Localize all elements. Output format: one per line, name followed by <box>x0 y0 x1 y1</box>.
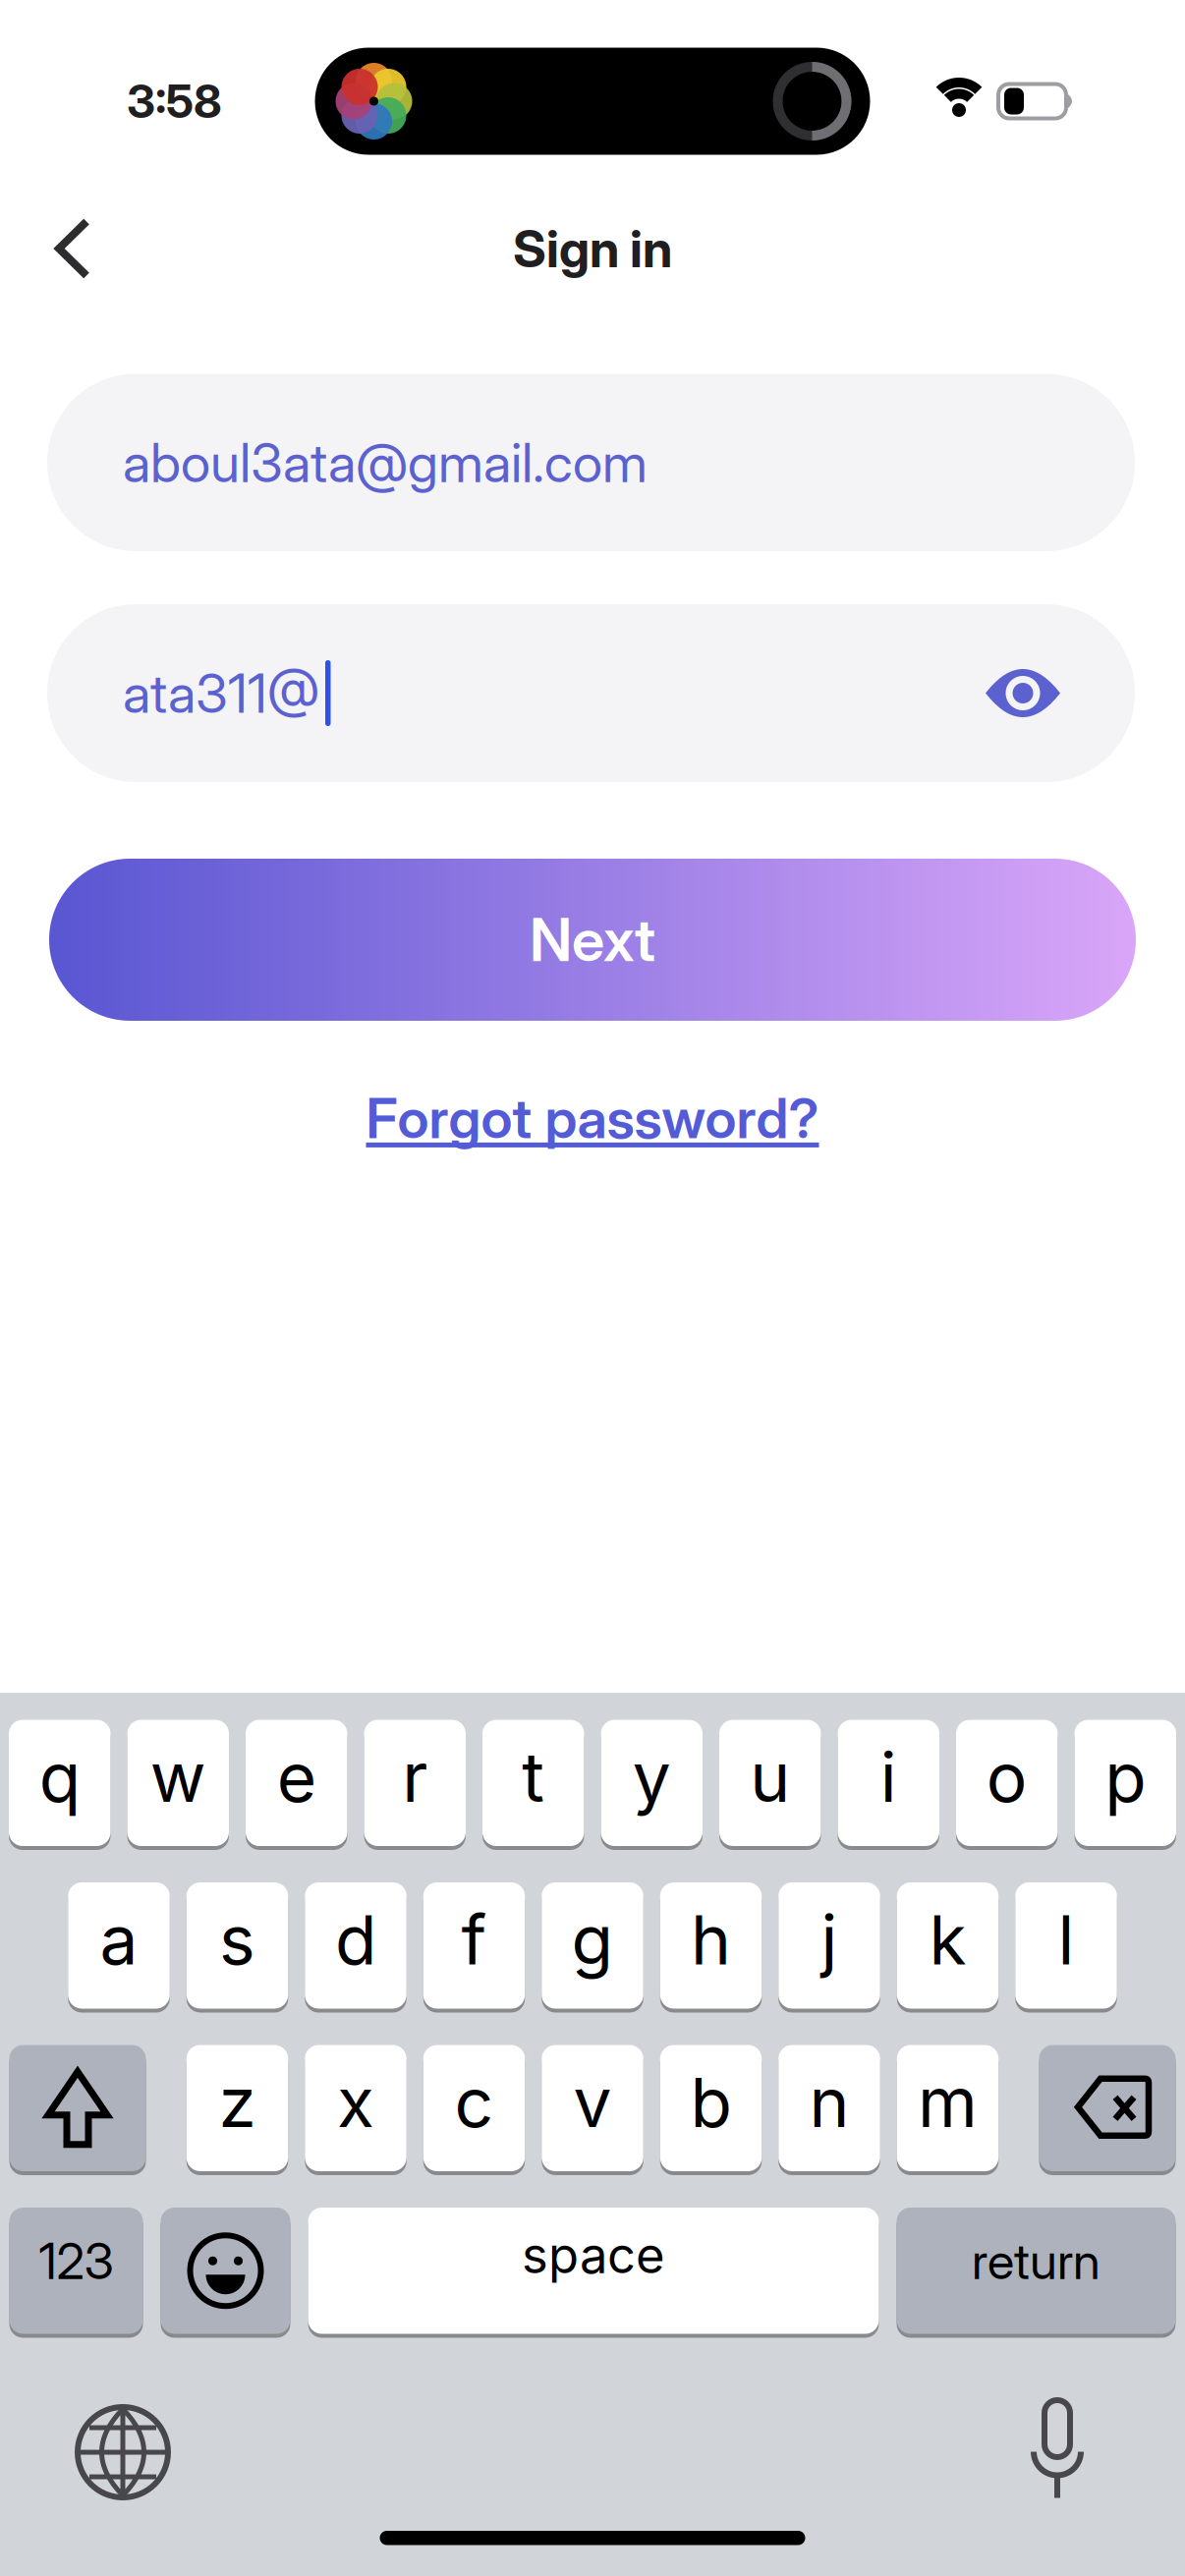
staticText: a <box>100 1898 138 1981</box>
button[interactable] <box>1039 2045 1176 2171</box>
button[interactable]: g <box>542 1882 643 2009</box>
staticText: Next <box>530 905 655 974</box>
staticText: i <box>880 1736 897 1818</box>
staticText: u <box>750 1736 790 1818</box>
button[interactable]: w <box>127 1720 229 1846</box>
button[interactable]: f <box>423 1882 525 2009</box>
button[interactable]: j <box>778 1882 880 2009</box>
button[interactable]: u <box>719 1720 821 1846</box>
staticText: b <box>690 2061 732 2143</box>
staticText: w <box>150 1736 206 1818</box>
staticText: Sign in <box>513 218 672 279</box>
staticText: j <box>821 1898 838 1981</box>
button[interactable]: q <box>9 1720 111 1846</box>
button[interactable]: ata311@ <box>0 604 1185 782</box>
staticText: d <box>335 1898 376 1981</box>
button[interactable]: k <box>897 1882 999 2009</box>
staticText: 123 <box>39 2232 113 2290</box>
button[interactable]: v <box>542 2045 643 2171</box>
button[interactable] <box>984 664 1062 723</box>
button[interactable]: b <box>660 2045 762 2171</box>
button[interactable]: x <box>305 2045 406 2171</box>
button[interactable] <box>161 2208 290 2334</box>
staticText: s <box>219 1898 255 1981</box>
staticText: k <box>929 1898 966 1981</box>
staticText: Forgot password? <box>366 1086 819 1151</box>
staticText: v <box>573 2061 612 2143</box>
button[interactable]: c <box>423 2045 525 2171</box>
button[interactable]: i <box>838 1720 939 1846</box>
staticText: n <box>809 2061 849 2143</box>
button[interactable]: t <box>482 1720 584 1846</box>
button[interactable]: r <box>364 1720 466 1846</box>
staticText: z <box>219 2061 256 2143</box>
staticText: q <box>39 1736 80 1818</box>
staticText: e <box>277 1736 316 1818</box>
staticText: r <box>402 1736 428 1818</box>
button[interactable] <box>56 219 89 279</box>
button[interactable]: p <box>1074 1720 1176 1846</box>
button[interactable]: h <box>660 1882 762 2009</box>
button[interactable]: m <box>897 2045 999 2171</box>
staticText: 3:58 <box>127 74 222 128</box>
button[interactable]: s <box>186 1882 288 2009</box>
staticText: m <box>918 2061 978 2143</box>
button[interactable]: return <box>897 2208 1176 2334</box>
staticText: x <box>337 2061 374 2143</box>
staticText: c <box>454 2061 494 2143</box>
staticText: l <box>1058 1898 1074 1981</box>
button[interactable]: l <box>1015 1882 1117 2009</box>
staticText: return <box>972 2232 1100 2290</box>
button[interactable]: a <box>68 1882 170 2009</box>
button[interactable] <box>78 2407 168 2497</box>
staticText: t <box>522 1736 545 1818</box>
button[interactable]: space <box>308 2208 879 2334</box>
button[interactable]: o <box>956 1720 1058 1846</box>
button[interactable]: e <box>246 1720 347 1846</box>
staticText: f <box>461 1898 487 1981</box>
staticText: space <box>522 2225 665 2285</box>
button[interactable]: d <box>305 1882 406 2009</box>
button[interactable]: 123 <box>9 2208 143 2334</box>
staticText: y <box>633 1736 671 1818</box>
staticText: ata311@ <box>123 661 319 725</box>
staticText: g <box>571 1898 614 1981</box>
staticText: o <box>986 1736 1028 1818</box>
staticText: h <box>691 1898 731 1981</box>
staticText: p <box>1105 1736 1146 1818</box>
button[interactable]: n <box>778 2045 880 2171</box>
button[interactable]: y <box>601 1720 703 1846</box>
staticText: aboul3ata@gmail.com <box>123 431 648 494</box>
button[interactable]: Next <box>0 859 1185 1021</box>
button[interactable]: Forgot password? <box>366 1086 819 1151</box>
button[interactable] <box>1030 2400 1085 2505</box>
button[interactable]: aboul3ata@gmail.com <box>0 374 1185 551</box>
button[interactable]: z <box>186 2045 288 2171</box>
button[interactable] <box>9 2045 146 2171</box>
